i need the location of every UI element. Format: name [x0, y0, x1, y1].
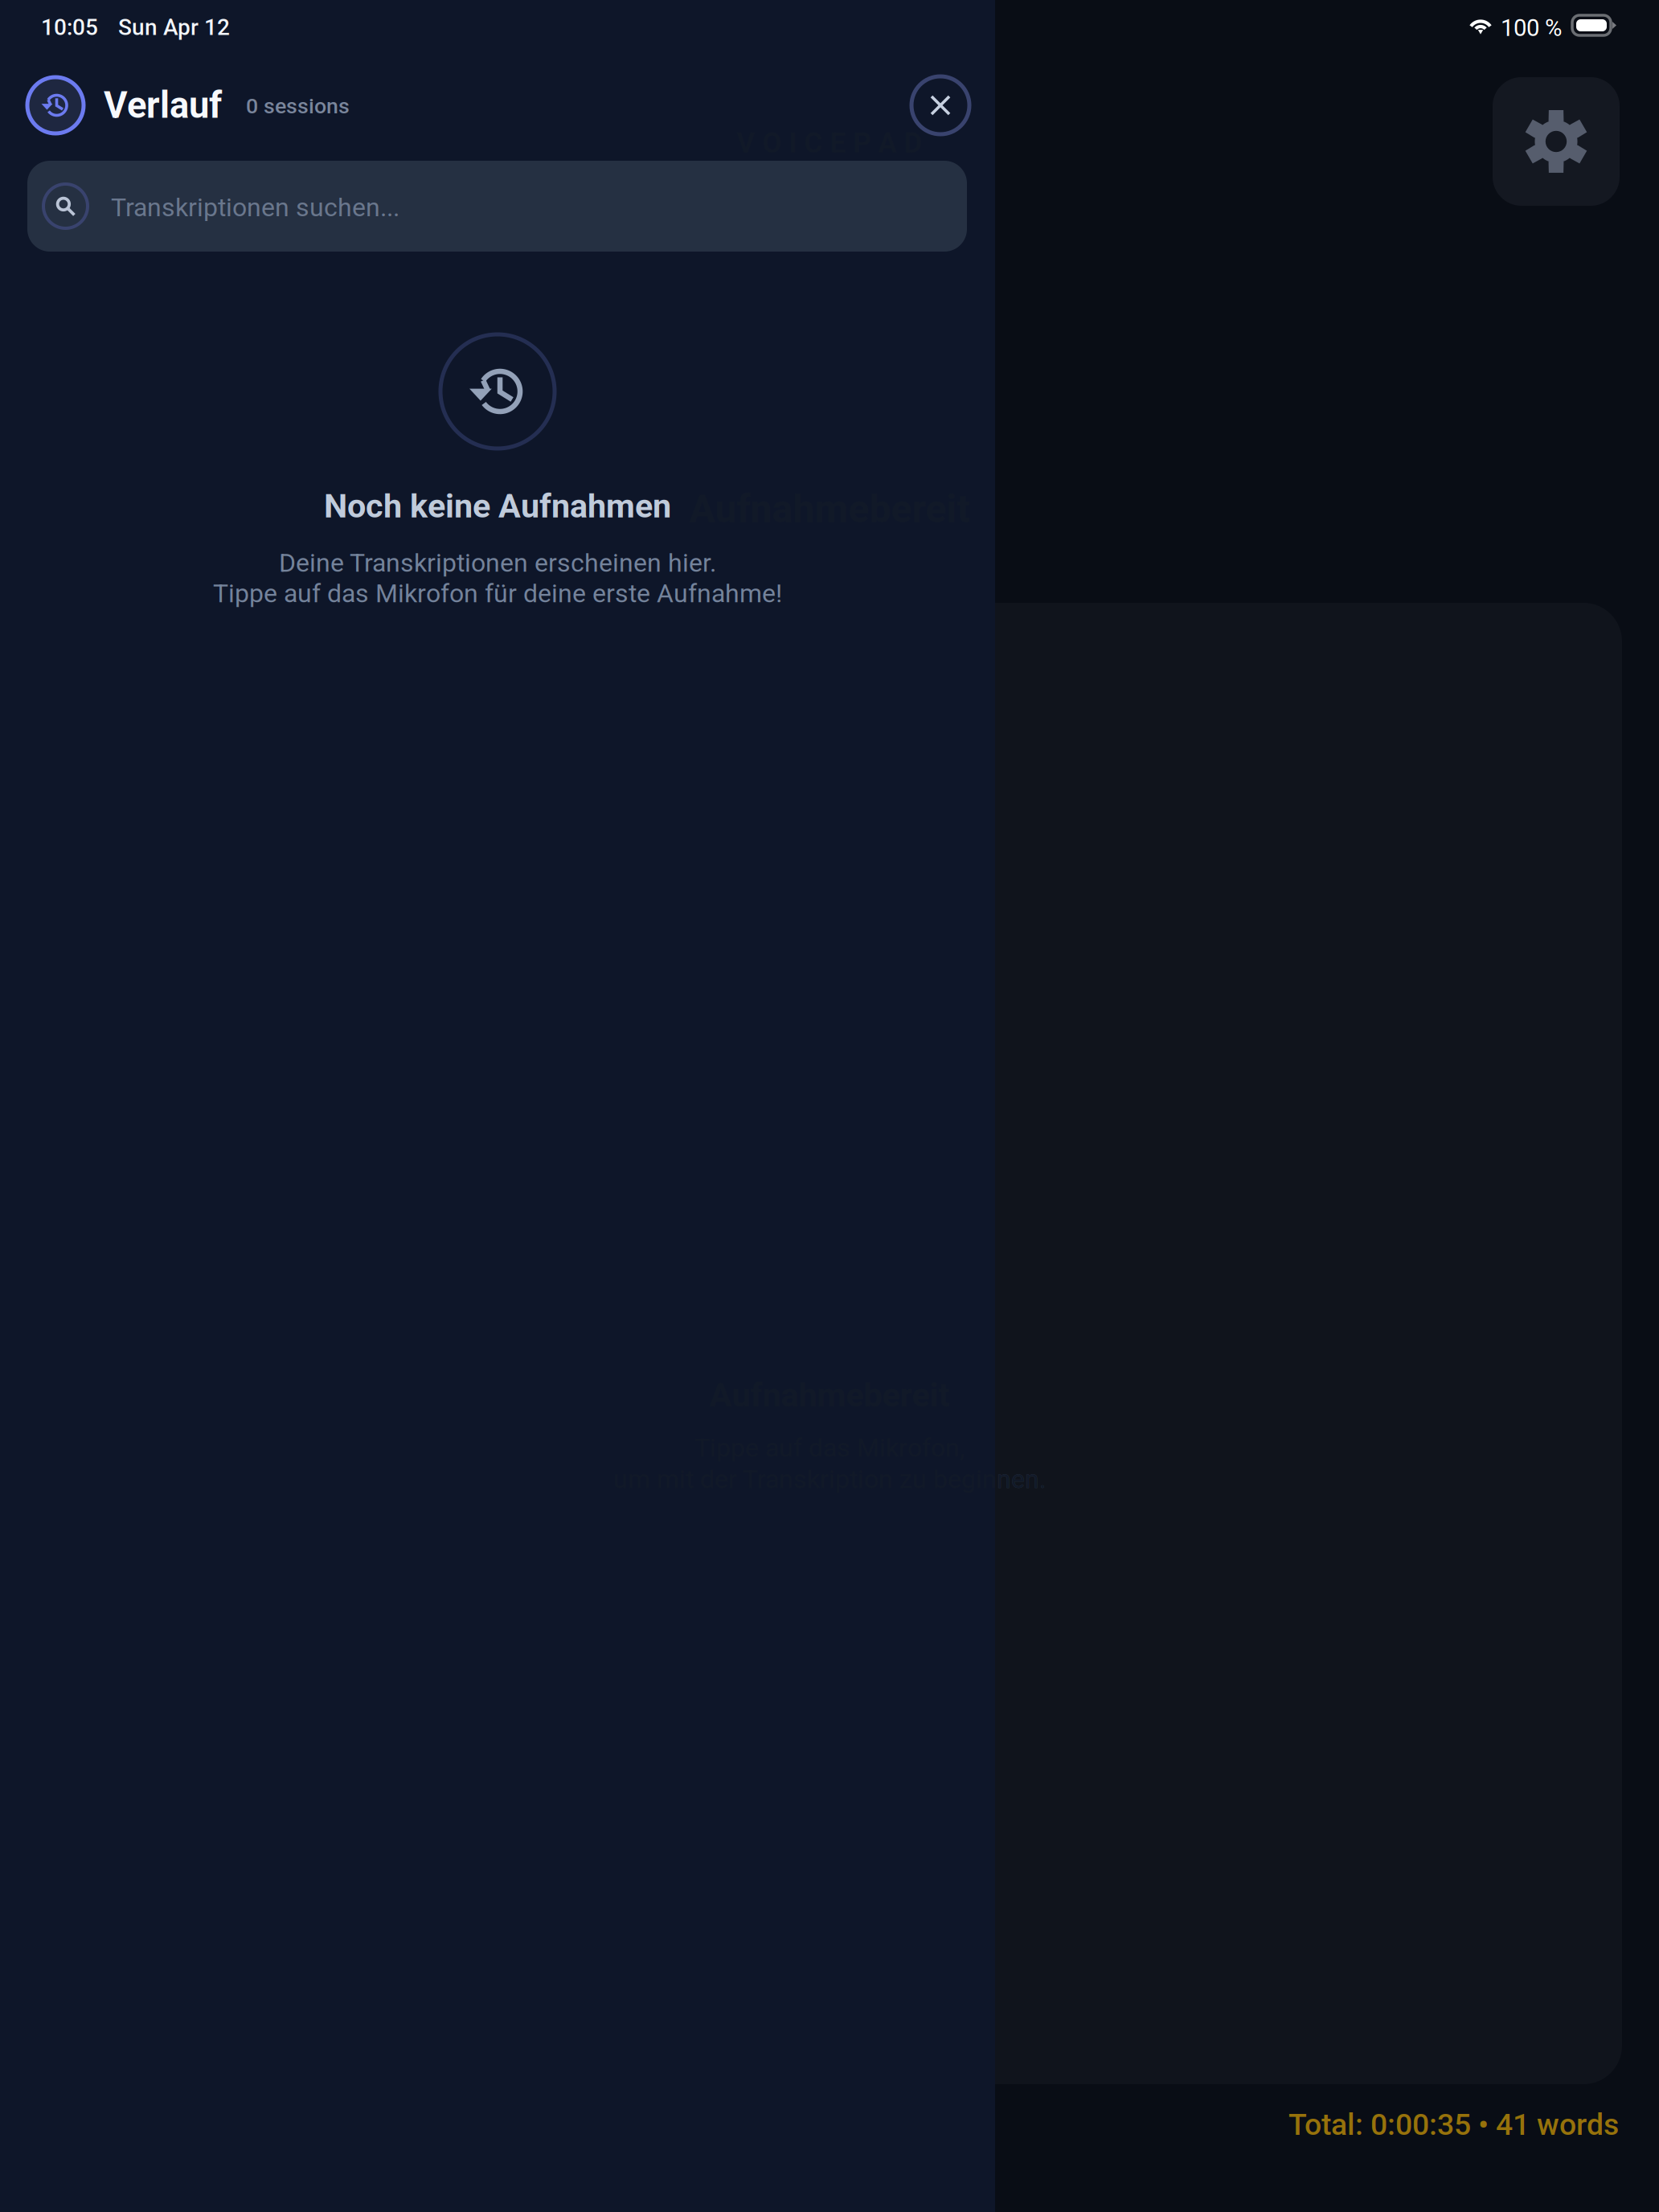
staticText: Deine Transkriptionen erscheinen hier. [279, 548, 716, 578]
staticText: Verlauf [104, 84, 222, 126]
staticText: 100 % [1501, 14, 1562, 41]
staticText: 10:05 [41, 14, 98, 40]
staticText: um mit der Transkription zu beginnen. [613, 1464, 1046, 1494]
staticText: Noch keine Aufnahmen [324, 487, 671, 525]
staticText: Sun Apr 12 [118, 14, 230, 40]
staticText: Tippe auf das Mikrofon für deine erste A… [213, 579, 782, 608]
staticText: um mit der Transkription zu beginnen. [613, 1464, 1046, 1494]
button[interactable]: Transkriptionen suchen... [27, 161, 967, 252]
staticText: Total: 0:00:35 • 41 words [1288, 2108, 1619, 2142]
button[interactable]: Settings [1493, 77, 1620, 206]
staticText: 0 sessions [246, 94, 350, 118]
button[interactable]: Close [911, 76, 969, 134]
staticText: Transkriptionen suchen... [111, 193, 399, 222]
